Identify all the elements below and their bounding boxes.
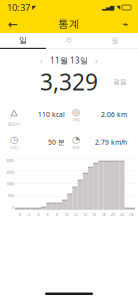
staticText: 걸음 — [113, 78, 127, 86]
staticText: 16 — [92, 212, 96, 217]
staticText: 시간 — [10, 145, 18, 150]
staticText: 24 — [129, 212, 133, 217]
button[interactable]: 일 — [0, 33, 46, 49]
staticText: 22 — [120, 212, 124, 217]
staticText: ‹ — [40, 54, 43, 66]
staticText: 6 — [47, 212, 49, 217]
staticText: ◷ — [10, 134, 18, 145]
staticText: 1000 — [6, 181, 14, 186]
staticText: 월 — [111, 36, 119, 46]
staticText: 12 — [73, 212, 77, 217]
staticText: 10:37 — [7, 1, 30, 14]
staticText: 속도 — [72, 145, 80, 150]
button[interactable]: Share — [115, 15, 135, 33]
staticText: 14 — [83, 212, 87, 217]
button[interactable]: 월 — [92, 33, 138, 49]
staticText: › — [95, 54, 98, 66]
staticText: 통계 — [58, 17, 80, 30]
staticText: 0 — [12, 204, 14, 210]
staticText: 주 — [65, 36, 73, 46]
button[interactable]: Previous day — [37, 55, 46, 65]
staticText: 일 — [19, 35, 27, 45]
staticText: 3000 — [6, 158, 14, 163]
staticText: 3,329 — [40, 67, 98, 97]
staticText: 50 분 — [48, 138, 65, 146]
staticText: 2000 — [6, 169, 14, 175]
staticText: 2.79 km/h — [95, 138, 127, 146]
staticText: ← — [8, 17, 18, 31]
staticText: 2.06 km — [101, 110, 127, 119]
staticText: 11월 13일 — [50, 55, 88, 66]
staticText: ▂▄▆ — [102, 4, 114, 11]
staticText: ◎ — [72, 107, 80, 117]
staticText: 거리 — [72, 117, 80, 122]
staticText: 8 — [56, 212, 58, 217]
staticText: 🜂 — [10, 103, 18, 121]
button[interactable]: Back — [3, 15, 23, 33]
staticText: 20 — [111, 212, 115, 217]
staticText: 500 — [8, 193, 14, 198]
button[interactable]: Next day — [92, 55, 101, 65]
staticText: 10 — [64, 212, 68, 217]
staticText: 18 — [101, 212, 105, 217]
staticText: ◤ — [32, 4, 36, 11]
staticText: 4 — [37, 212, 39, 217]
staticText: 칼로리 — [8, 121, 20, 126]
staticText: 2 — [28, 212, 30, 217]
staticText: 0 — [19, 212, 21, 217]
staticText: ⌁ — [122, 18, 128, 30]
button[interactable]: 주 — [46, 33, 92, 49]
staticText: ◔ — [72, 134, 80, 145]
staticText: ◥ — [116, 4, 120, 11]
staticText: 110 kcal — [38, 110, 65, 119]
